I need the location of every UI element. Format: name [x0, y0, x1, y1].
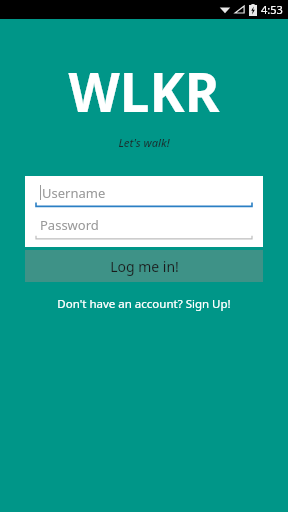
button[interactable]: Password	[36, 214, 252, 240]
staticText: Password	[40, 216, 99, 234]
staticText: Let's walk!	[0, 135, 288, 150]
button[interactable]: Don't have an account? Sign Up!	[0, 296, 288, 312]
button[interactable]: Username	[36, 182, 252, 208]
staticText: Don't have an account? Sign Up!	[57, 296, 231, 312]
button[interactable]: Log me in!	[25, 250, 263, 282]
staticText: Log me in!	[110, 257, 179, 276]
staticText: WLKR	[0, 55, 288, 127]
staticText: Username	[42, 184, 106, 202]
staticText: 4:53	[261, 2, 283, 17]
